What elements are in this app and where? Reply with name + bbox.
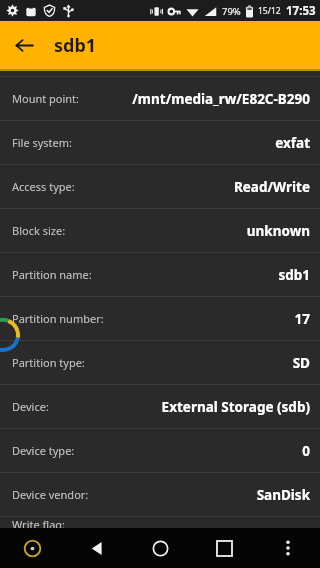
button[interactable]: File system: bbox=[0, 121, 320, 164]
button[interactable]: Device type: bbox=[0, 429, 320, 472]
button[interactable]: Navigate up bbox=[6, 27, 42, 63]
button[interactable]: Partition name: bbox=[0, 253, 320, 296]
staticText: Partition number: bbox=[12, 311, 104, 326]
button[interactable]: Home bbox=[128, 528, 192, 568]
staticText: Read/Write bbox=[233, 178, 310, 196]
button[interactable]: Switch input method bbox=[0, 528, 64, 568]
staticText: 79% bbox=[222, 5, 241, 18]
button[interactable]: Partition number: bbox=[0, 297, 320, 340]
staticText: Device vendor: bbox=[12, 487, 89, 502]
staticText: Partition name: bbox=[12, 267, 92, 282]
staticText: Device type: bbox=[12, 443, 75, 458]
staticText: 17 bbox=[294, 310, 310, 328]
staticText: Partition type: bbox=[12, 355, 85, 370]
staticText: SD bbox=[292, 354, 310, 372]
staticText: File system: bbox=[12, 135, 73, 150]
staticText: SanDisk bbox=[256, 486, 310, 504]
staticText: Device: bbox=[12, 399, 49, 414]
staticText: unknown bbox=[246, 222, 310, 240]
staticText: exfat bbox=[275, 134, 310, 152]
button[interactable]: Partition type: bbox=[0, 341, 320, 384]
staticText: sdb1 bbox=[278, 266, 310, 284]
button[interactable]: Block size: bbox=[0, 209, 320, 252]
button[interactable]: Device: bbox=[0, 385, 320, 428]
staticText: sdb1 bbox=[54, 33, 97, 58]
button[interactable]: Access type: bbox=[0, 165, 320, 208]
staticText: Access type: bbox=[12, 179, 75, 194]
button[interactable]: Mount point: bbox=[0, 77, 320, 120]
button[interactable]: Write flag: bbox=[0, 517, 320, 528]
staticText: Block size: bbox=[12, 223, 66, 238]
staticText: External Storage (sdb) bbox=[161, 398, 310, 416]
staticText: Mount point: bbox=[12, 91, 80, 106]
button[interactable]: More options bbox=[256, 528, 320, 568]
button[interactable]: Device vendor: bbox=[0, 473, 320, 516]
staticText: Write flag: bbox=[12, 517, 66, 528]
staticText: 17:53 bbox=[286, 3, 316, 19]
button[interactable]: Back bbox=[64, 528, 128, 568]
staticText: /mnt/media_rw/E82C-B290 bbox=[132, 90, 310, 108]
staticText: 0 bbox=[302, 442, 310, 460]
staticText: 15/12 bbox=[258, 5, 281, 17]
button[interactable]: Recent apps bbox=[192, 528, 256, 568]
